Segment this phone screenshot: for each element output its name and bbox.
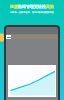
staticText: 高效 — [46, 4, 54, 9]
staticText: 健康 — [10, 4, 18, 9]
staticText: 数据管理更轻松 — [18, 4, 46, 9]
staticText: 记录每一天健康状况，智能分析身体数据趋势 — [0, 11, 64, 14]
